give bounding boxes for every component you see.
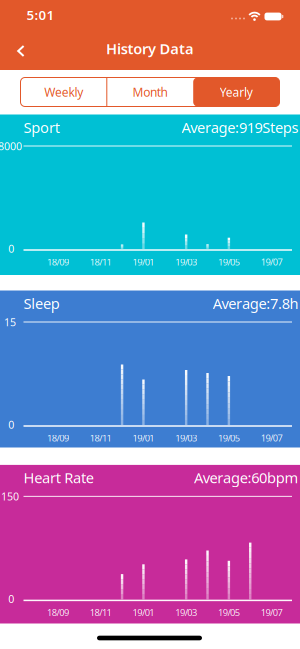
staticText: 18/09	[47, 432, 69, 444]
staticText: 5:01	[26, 6, 54, 24]
staticText: 150	[1, 489, 19, 503]
staticText: Average:60bpm	[194, 468, 298, 487]
staticText: Yearly	[220, 84, 253, 100]
button[interactable]: Weekly	[21, 77, 107, 106]
staticText: 8000	[0, 139, 22, 153]
staticText: 0	[8, 241, 14, 256]
staticText: 19/07	[261, 256, 282, 268]
staticText: 19/01	[132, 256, 154, 268]
staticText: 18/09	[47, 256, 69, 268]
button[interactable]: Back	[17, 45, 25, 57]
button[interactable]: Month	[107, 77, 193, 106]
staticText: 0	[8, 592, 14, 606]
staticText: Average:7.8h	[213, 293, 298, 313]
staticText: 19/07	[261, 432, 282, 444]
staticText: Weekly	[44, 84, 83, 100]
staticText: 19/01	[132, 432, 154, 444]
staticText: 19/01	[132, 606, 154, 619]
staticText: 18/11	[90, 256, 112, 268]
staticText: 18/09	[47, 606, 69, 619]
staticText: Heart Rate	[23, 468, 94, 487]
staticText: Sport	[23, 117, 60, 137]
staticText: Month	[132, 84, 168, 100]
staticText: 19/03	[175, 432, 197, 444]
staticText: Average:919Steps	[181, 117, 298, 137]
staticText: 15	[4, 315, 16, 329]
staticText: 19/05	[218, 432, 240, 444]
staticText: 18/11	[90, 432, 112, 444]
staticText: 19/03	[175, 606, 197, 619]
staticText: 19/03	[175, 256, 197, 268]
button[interactable]: Yearly	[193, 77, 279, 106]
staticText: 0	[8, 417, 14, 432]
staticText: 19/05	[218, 606, 240, 619]
staticText: 18/11	[90, 606, 112, 619]
staticText: 19/07	[261, 606, 282, 619]
staticText: 19/05	[218, 256, 240, 268]
staticText: Sleep	[23, 293, 60, 313]
staticText: History Data	[106, 39, 194, 58]
